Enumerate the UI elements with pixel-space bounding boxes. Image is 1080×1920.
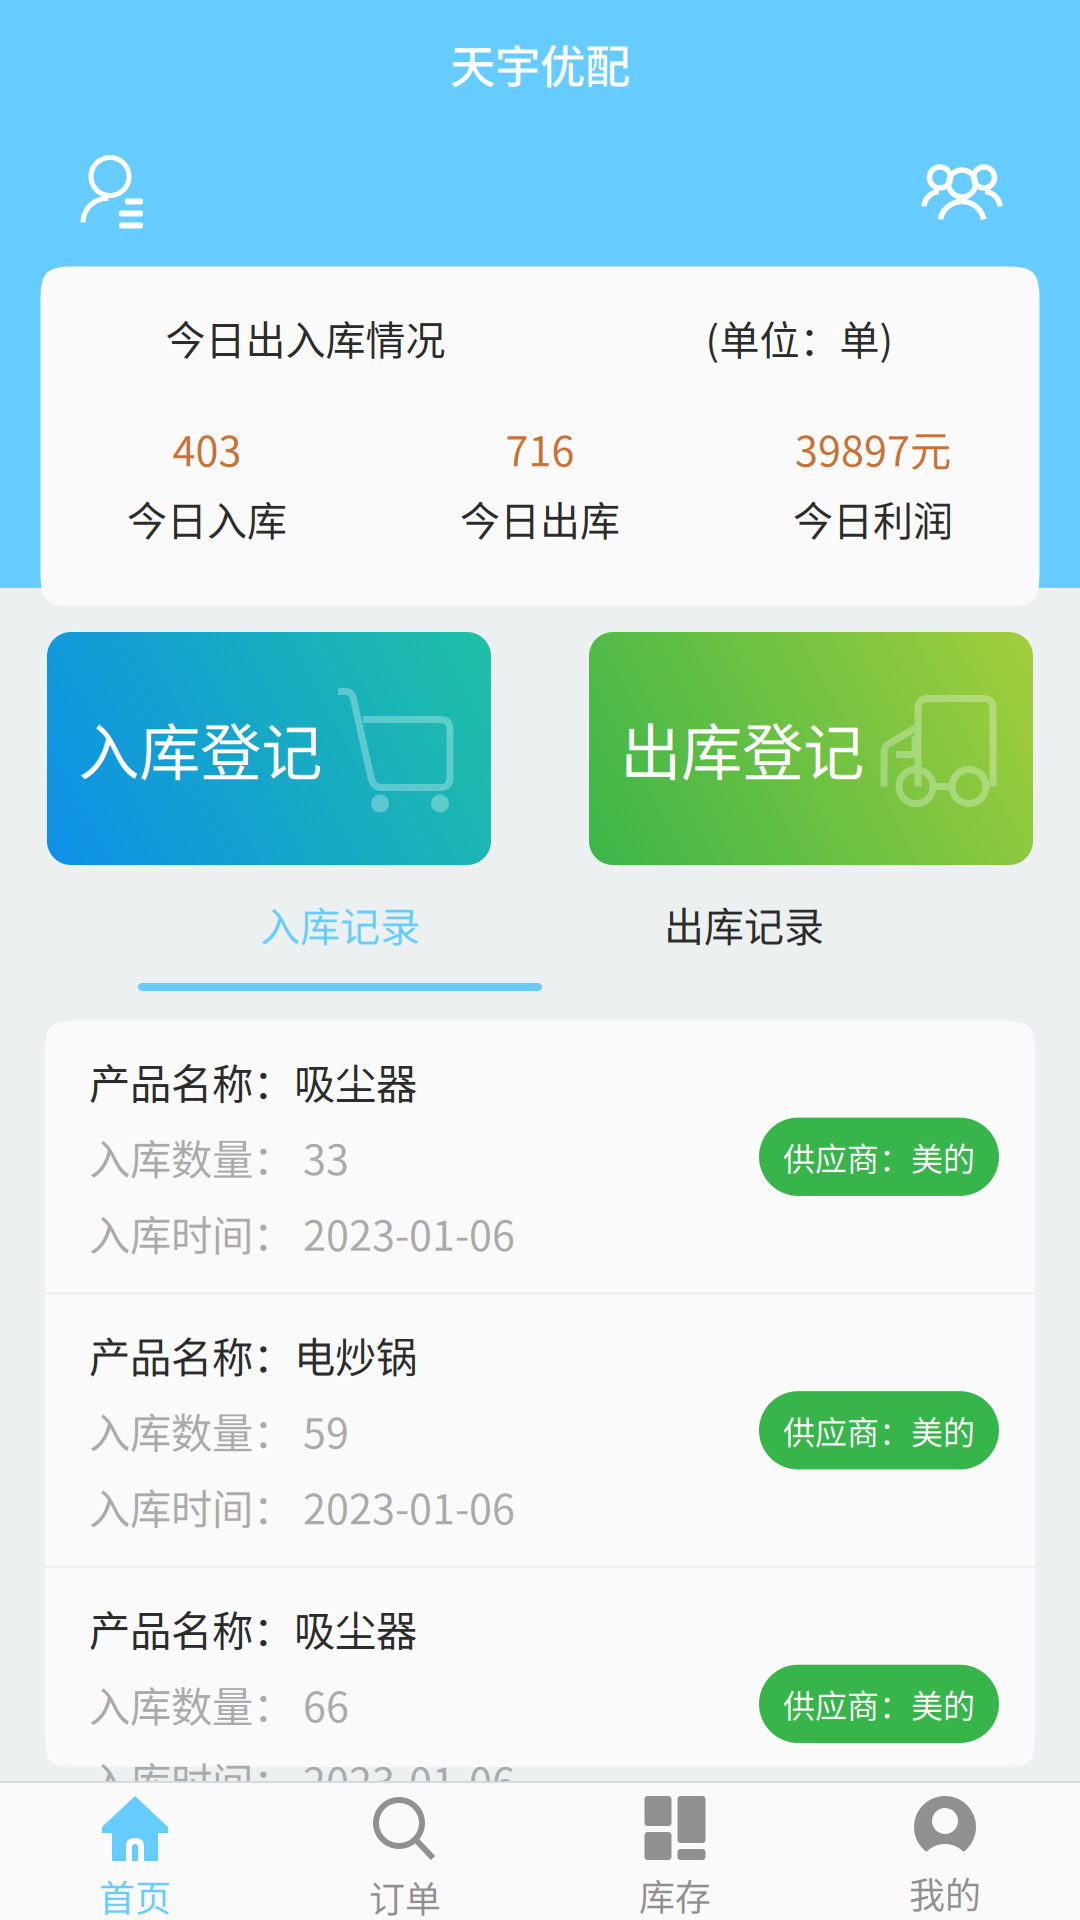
- staticText: 天宇优配: [450, 31, 630, 96]
- staticText: 出库登记: [620, 704, 864, 793]
- button[interactable]: 个人资料: [83, 154, 143, 228]
- staticText: 产品名称：吸尘器: [89, 1598, 417, 1658]
- staticText: 入库记录: [260, 895, 420, 953]
- staticText: (单位：单): [705, 308, 893, 366]
- button[interactable]: 产品名称：电炒锅: [45, 1295, 1035, 1566]
- button[interactable]: 首页: [0, 1783, 270, 1920]
- staticText: 产品名称：吸尘器: [89, 1051, 417, 1111]
- button[interactable]: 出库登记: [589, 632, 1033, 865]
- staticText: 首页: [99, 1870, 171, 1920]
- button[interactable]: 入库记录: [138, 865, 542, 991]
- staticText: 产品名称：电炒锅: [89, 1325, 417, 1384]
- staticText: 供应商：美的: [783, 1134, 975, 1180]
- staticText: 今日出入库情况: [165, 308, 445, 366]
- staticText: 订单: [369, 1871, 441, 1920]
- button[interactable]: 库存: [540, 1783, 810, 1920]
- button[interactable]: 产品名称：吸尘器: [45, 1021, 1035, 1293]
- button[interactable]: 出库记录: [542, 865, 946, 991]
- staticText: 入库时间： 2023-01-06: [89, 1203, 515, 1263]
- staticText: 供应商：美的: [783, 1407, 975, 1453]
- staticText: 403: [172, 418, 241, 478]
- staticText: 入库数量： 66: [89, 1674, 349, 1734]
- button[interactable]: 我的: [810, 1783, 1080, 1920]
- staticText: 入库登记: [78, 704, 322, 793]
- button[interactable]: 团队成员: [927, 163, 997, 219]
- staticText: 入库时间： 2023-01-06: [89, 1476, 515, 1536]
- button[interactable]: 入库登记: [47, 632, 491, 865]
- staticText: 入库时间： 2023-01-06: [89, 1750, 515, 1810]
- staticText: 入库数量： 33: [89, 1127, 349, 1187]
- button[interactable]: 产品名称：吸尘器: [45, 1568, 1035, 1840]
- staticText: 供应商：美的: [783, 1681, 975, 1727]
- staticText: 今日入库: [127, 489, 287, 547]
- staticText: 39897元: [795, 418, 951, 478]
- staticText: 716: [505, 418, 574, 478]
- staticText: 库存: [639, 1869, 711, 1920]
- staticText: 我的: [909, 1867, 981, 1919]
- button[interactable]: 订单: [270, 1783, 540, 1920]
- staticText: 入库数量： 59: [89, 1400, 349, 1460]
- staticText: 今日利润: [793, 489, 953, 547]
- staticText: 今日出库: [460, 489, 620, 547]
- staticText: 出库记录: [664, 895, 824, 953]
